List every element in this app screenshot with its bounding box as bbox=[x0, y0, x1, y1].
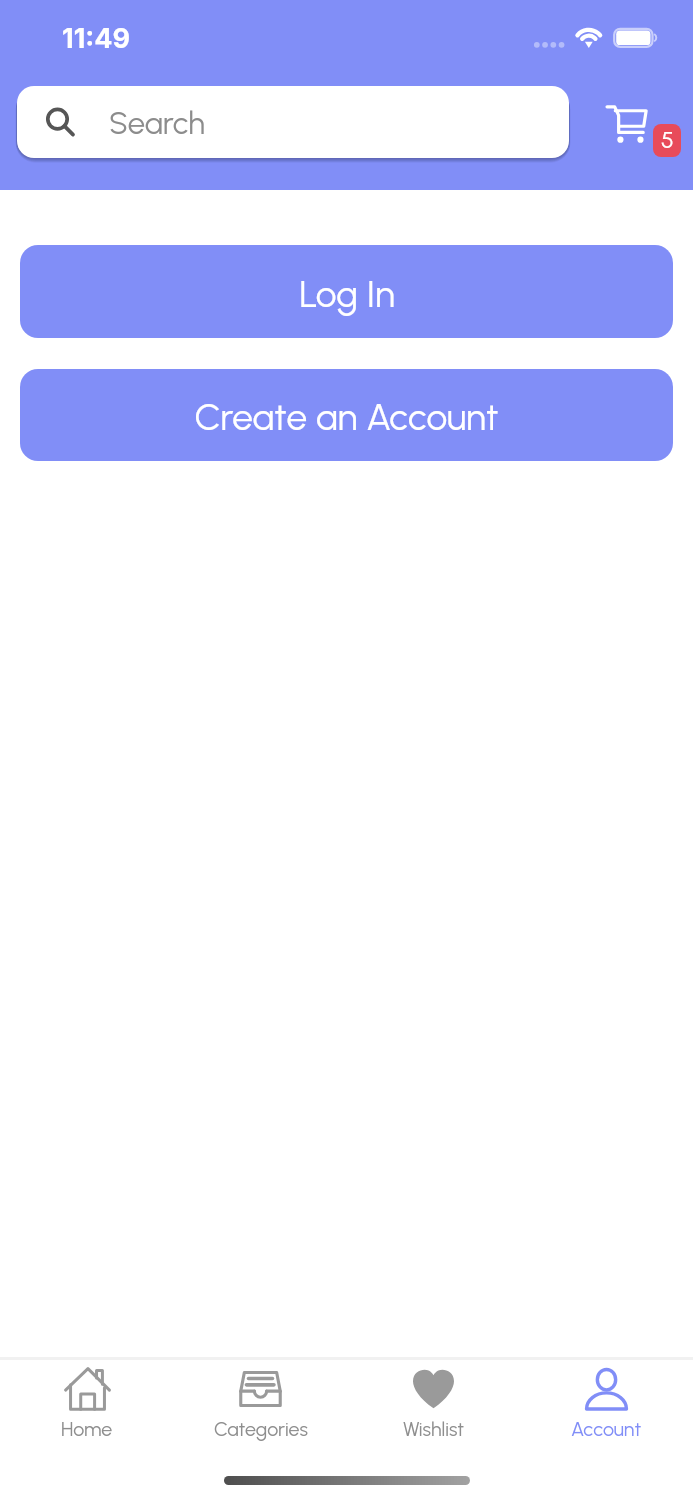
button[interactable]: Home bbox=[0, 1367, 174, 1441]
staticText: Search bbox=[109, 105, 205, 142]
staticText: Create an Account bbox=[194, 395, 499, 439]
staticText: Home bbox=[61, 1417, 113, 1441]
button[interactable]: Create an Account bbox=[20, 369, 673, 461]
staticText: Log In bbox=[299, 272, 395, 316]
staticText: Wishlist bbox=[403, 1417, 465, 1441]
button[interactable]: Shopping cart, 5 items bbox=[600, 100, 686, 160]
staticText: 11:49 bbox=[62, 22, 131, 55]
button[interactable]: Categories bbox=[174, 1367, 347, 1441]
button[interactable]: Wishlist bbox=[347, 1367, 520, 1441]
button[interactable]: Account bbox=[520, 1367, 693, 1441]
button[interactable]: Search bbox=[17, 86, 569, 158]
staticText: 5 bbox=[661, 126, 674, 154]
staticText: Account bbox=[571, 1417, 642, 1441]
button[interactable]: Log In bbox=[20, 245, 673, 338]
staticText: Categories bbox=[214, 1417, 308, 1441]
